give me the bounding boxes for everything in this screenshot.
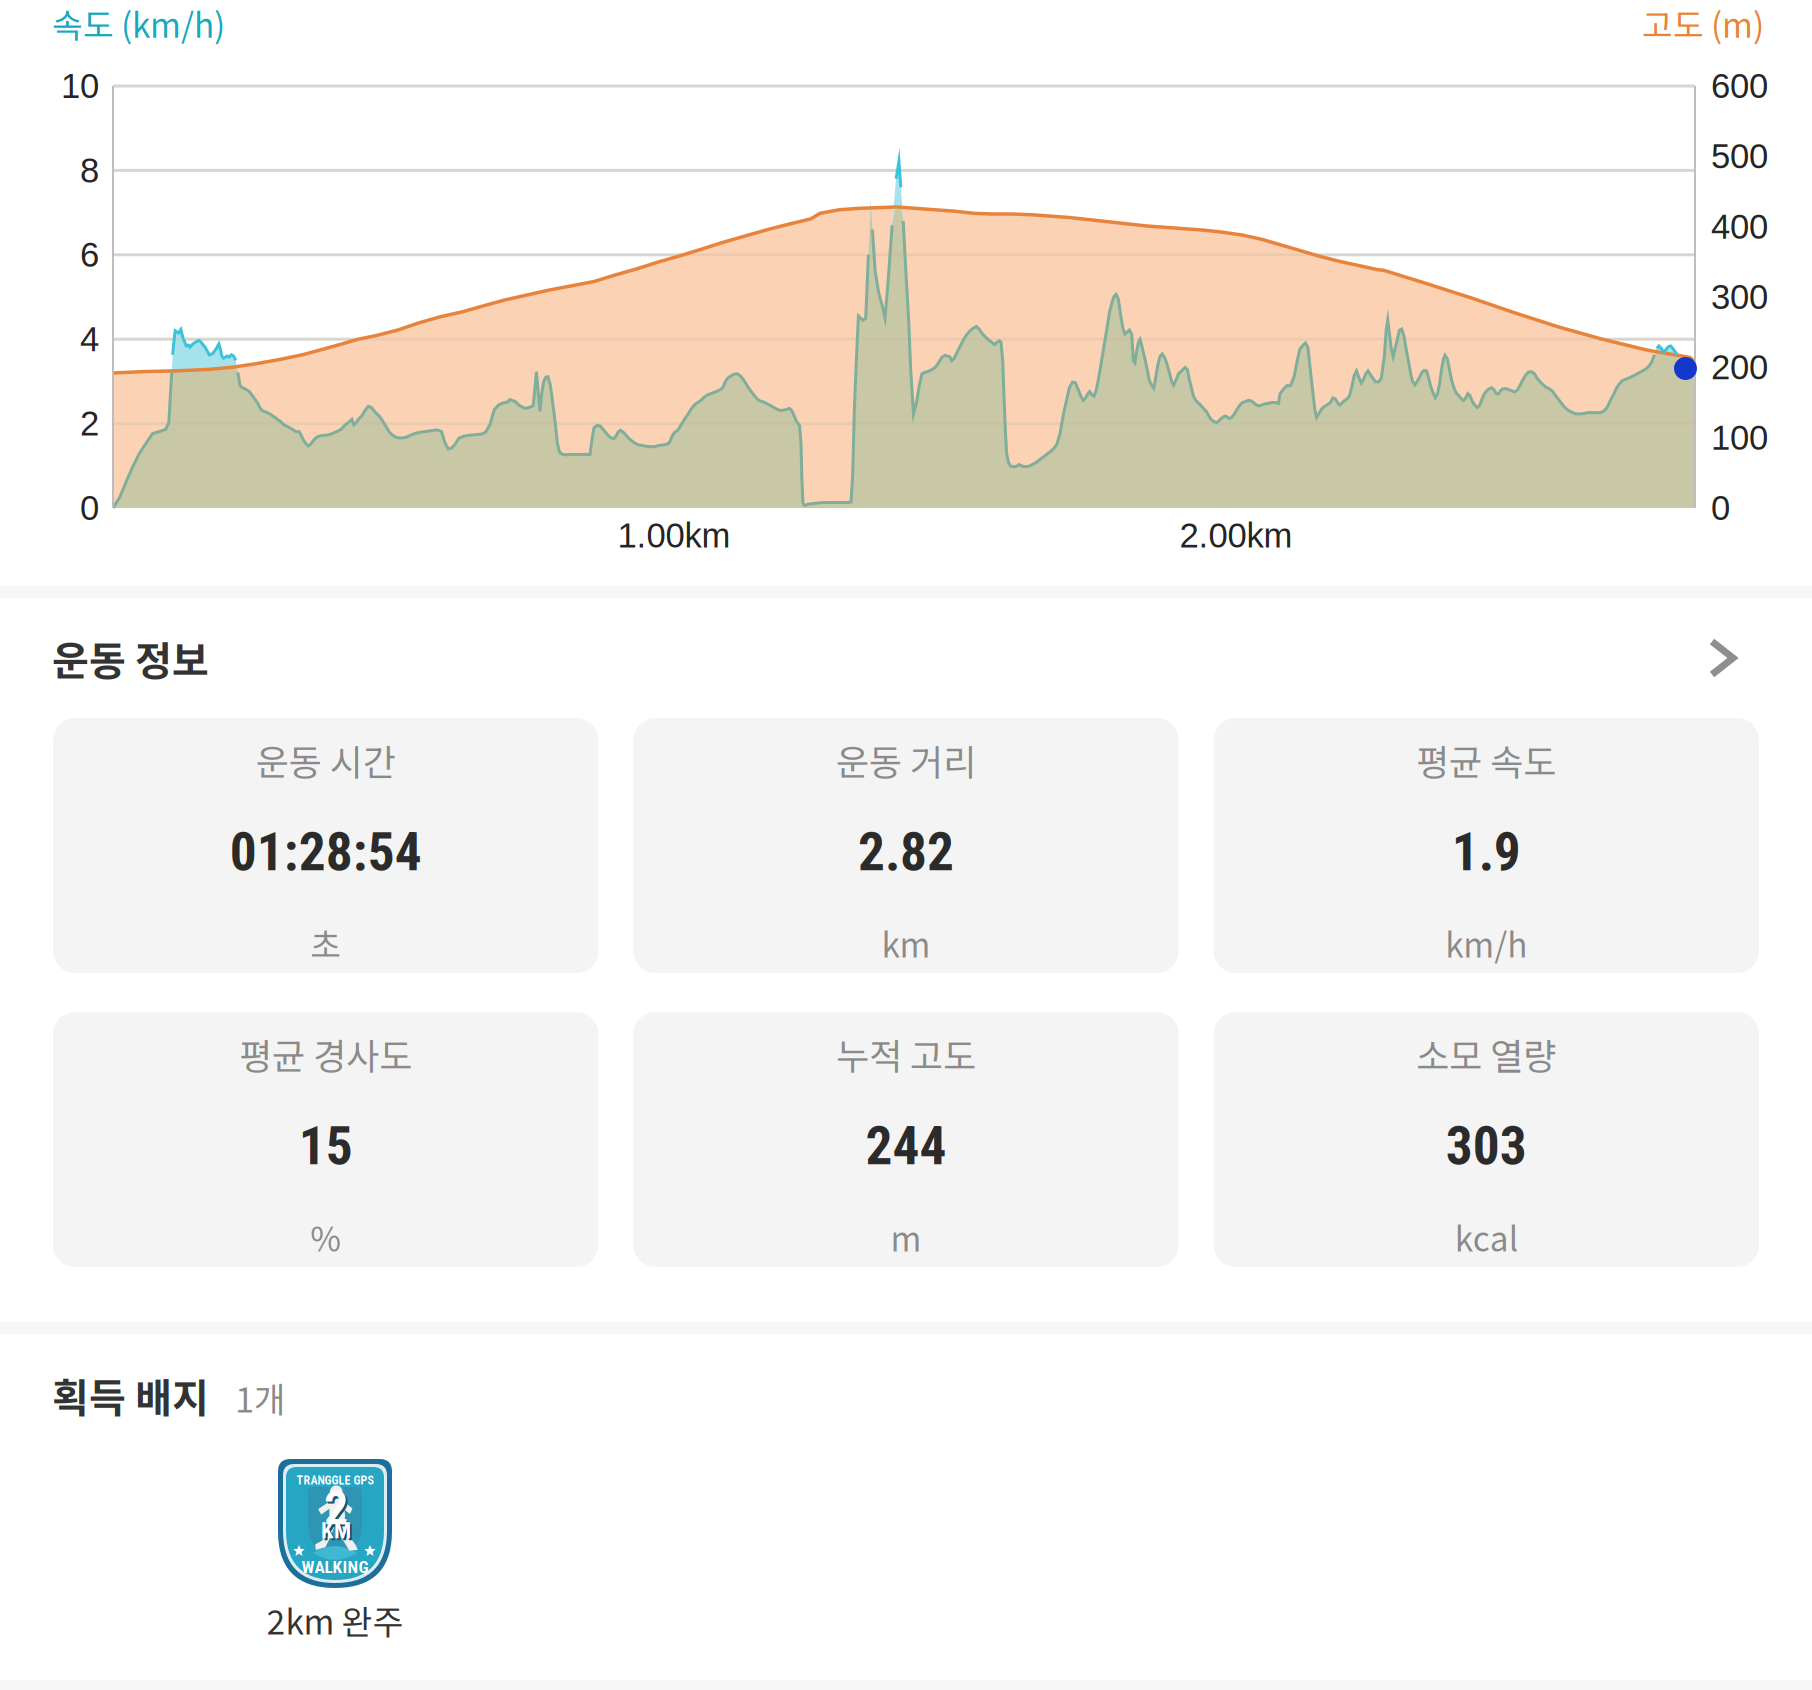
- staticText: 1.9: [1452, 821, 1521, 883]
- staticText: km: [881, 919, 930, 967]
- staticText: 2: [80, 404, 99, 443]
- staticText: 4: [80, 320, 99, 358]
- staticText: 244: [865, 1115, 946, 1177]
- staticText: 2.00km: [1179, 516, 1292, 555]
- staticText: 2km 완주: [266, 1596, 403, 1644]
- staticText: m: [890, 1213, 921, 1261]
- button[interactable]: 운동 거리: [633, 718, 1179, 973]
- staticText: 누적 고도: [836, 1028, 976, 1080]
- staticText: 600: [1711, 67, 1768, 105]
- staticText: %: [310, 1213, 341, 1261]
- staticText: 0: [80, 489, 99, 527]
- staticText: 소모 열량: [1416, 1028, 1556, 1080]
- staticText: 10: [61, 67, 99, 105]
- staticText: KM: [323, 1519, 353, 1546]
- staticText: 15: [299, 1115, 353, 1177]
- staticText: 1개: [235, 1372, 286, 1422]
- staticText: 2: [324, 1480, 348, 1536]
- button[interactable]: 평균 속도: [1214, 718, 1759, 973]
- staticText: 획득 배지: [52, 1366, 209, 1424]
- staticText: kcal: [1455, 1213, 1518, 1261]
- staticText: 6: [80, 235, 99, 274]
- button[interactable]: 운동 시간: [53, 718, 598, 973]
- staticText: 운동 정보: [52, 629, 209, 687]
- staticText: 속도 (km/h): [52, 0, 225, 47]
- staticText: KM: [321, 1517, 351, 1544]
- staticText: km/h: [1445, 919, 1527, 967]
- button[interactable]: 운동 정보: [0, 598, 1812, 718]
- button[interactable]: 누적 고도: [633, 1012, 1179, 1267]
- staticText: 평균 속도: [1416, 734, 1556, 786]
- staticText: 고도 (m): [1642, 0, 1764, 47]
- staticText: 303: [1446, 1115, 1527, 1177]
- staticText: 100: [1711, 418, 1768, 457]
- staticText: 2.82: [858, 821, 954, 883]
- staticText: 0: [1711, 489, 1730, 527]
- staticText: 400: [1711, 207, 1768, 246]
- staticText: 200: [1711, 348, 1768, 387]
- staticText: 8: [80, 151, 99, 190]
- staticText: 운동 시간: [256, 734, 396, 786]
- staticText: 초: [310, 919, 341, 967]
- staticText: 500: [1711, 137, 1768, 176]
- staticText: TRANGGLE GPS: [296, 1473, 373, 1488]
- button[interactable]: TRANGGLE GPS: [215, 1459, 455, 1638]
- button[interactable]: 소모 열량: [1214, 1012, 1759, 1267]
- staticText: 300: [1711, 278, 1768, 316]
- staticText: WALKING: [301, 1557, 368, 1577]
- staticText: 1.00km: [617, 516, 730, 555]
- staticText: 평균 경사도: [239, 1028, 412, 1080]
- staticText: 2: [326, 1482, 350, 1538]
- staticText: 운동 거리: [836, 734, 976, 786]
- staticText: 01:28:54: [230, 821, 422, 883]
- button[interactable]: 평균 경사도: [53, 1012, 598, 1267]
